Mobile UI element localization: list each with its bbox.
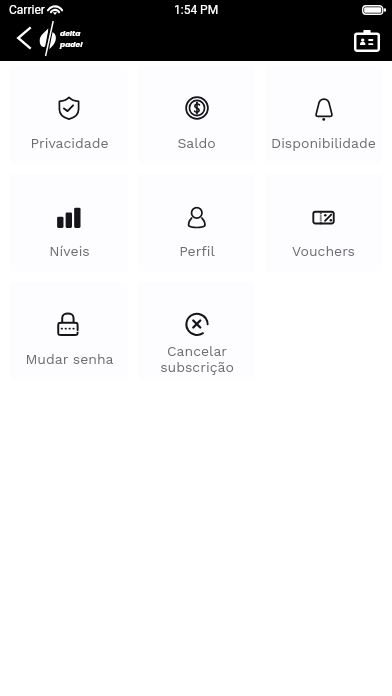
staticText: Níveis [49, 243, 90, 259]
button[interactable]: Cancelar subscrição [138, 282, 255, 380]
button[interactable]: Mudar senha [10, 282, 128, 380]
button[interactable]: Privacidade [10, 66, 128, 164]
staticText: Saldo [177, 135, 216, 151]
staticText: Privacidade [30, 135, 109, 151]
button[interactable]: Member card [350, 20, 383, 61]
button[interactable]: Saldo [138, 66, 255, 164]
staticText: padel [60, 39, 83, 50]
staticText: Disponibilidade [271, 135, 376, 151]
staticText: 1:54 PM [174, 3, 219, 17]
button[interactable]: Disponibilidade [265, 66, 382, 164]
staticText: Mudar senha [25, 351, 114, 367]
staticText: Carrier [9, 3, 45, 17]
button[interactable]: Perfil [138, 174, 255, 272]
button[interactable]: Níveis [10, 174, 128, 272]
staticText: Vouchers [292, 243, 355, 259]
button[interactable]: Back [0, 20, 38, 61]
button[interactable]: Vouchers [265, 174, 382, 272]
staticText: Perfil [179, 243, 215, 259]
staticText: Cancelar subscrição [160, 343, 234, 375]
staticText: delta [60, 28, 81, 39]
